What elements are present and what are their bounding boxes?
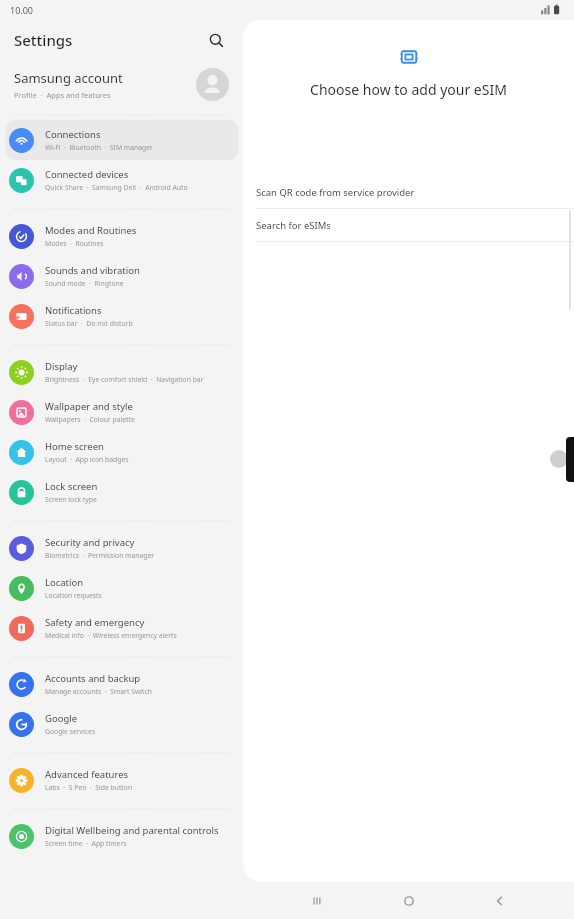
- staticText: Screen lock type: [45, 495, 97, 504]
- staticText: Notifications: [45, 304, 102, 317]
- staticText: Medical info · Wireless emergency alerts: [45, 631, 177, 640]
- button[interactable]: Advanced features: [5, 760, 238, 800]
- staticText: Modes and Routines: [45, 224, 137, 237]
- staticText: Search for eSIMs: [256, 219, 331, 232]
- button[interactable]: Recents: [300, 884, 334, 918]
- staticText: Google: [45, 712, 78, 725]
- staticText: Digital Wellbeing and parental controls: [45, 824, 219, 837]
- staticText: Profile · Apps and features: [14, 90, 111, 100]
- button[interactable]: Home screen: [5, 432, 238, 472]
- staticText: 10.00: [10, 4, 34, 16]
- button[interactable]: Home: [392, 884, 426, 918]
- button[interactable]: Google: [5, 704, 238, 744]
- staticText: Connections: [45, 128, 101, 141]
- staticText: Accounts and backup: [45, 672, 141, 685]
- staticText: Biometrics · Permission manager: [45, 551, 155, 560]
- button[interactable]: Search for eSIMs: [243, 209, 574, 241]
- button[interactable]: Sounds and vibration: [5, 256, 238, 296]
- button[interactable]: Accounts and backup: [5, 664, 238, 704]
- button[interactable]: Location: [5, 568, 238, 608]
- button[interactable]: Digital Wellbeing and parental controls: [5, 816, 238, 856]
- button[interactable]: Connections: [5, 120, 238, 160]
- staticText: Advanced features: [45, 768, 129, 781]
- staticText: Wallpaper and style: [45, 400, 133, 413]
- staticText: Settings: [14, 30, 73, 50]
- staticText: Screen time · App timers: [45, 839, 127, 848]
- staticText: Connected devices: [45, 168, 129, 181]
- button[interactable]: Connected devices: [5, 160, 238, 200]
- staticText: Lock screen: [45, 480, 98, 493]
- staticText: Location requests: [45, 591, 102, 600]
- staticText: Modes · Routines: [45, 239, 104, 248]
- staticText: Brightness · Eye comfort shield · Naviga…: [45, 375, 204, 384]
- staticText: Samsung account: [14, 69, 123, 87]
- button[interactable]: Back: [483, 884, 517, 918]
- staticText: Wi-Fi · Bluetooth · SIM manager: [45, 143, 153, 152]
- staticText: Google services: [45, 727, 96, 736]
- staticText: Labs · S Pen · Side button: [45, 783, 133, 792]
- staticText: Manage accounts · Smart Switch: [45, 687, 152, 696]
- staticText: Scan QR code from service provider: [256, 186, 415, 199]
- button[interactable]: Edge panel handle: [566, 437, 574, 482]
- staticText: Layout · App icon badges: [45, 455, 129, 464]
- staticText: Home screen: [45, 440, 104, 453]
- button[interactable]: Scan QR code from service provider: [243, 176, 574, 208]
- staticText: Sounds and vibration: [45, 264, 140, 277]
- button[interactable]: Notifications: [5, 296, 238, 336]
- staticText: Display: [45, 360, 78, 373]
- staticText: Sound mode · Ringtone: [45, 279, 124, 288]
- staticText: Safety and emergency: [45, 616, 145, 629]
- staticText: Security and privacy: [45, 536, 135, 549]
- button[interactable]: Display: [5, 352, 238, 392]
- button[interactable]: Wallpaper and style: [5, 392, 238, 432]
- button[interactable]: Lock screen: [5, 472, 238, 512]
- staticText: Status bar · Do not disturb: [45, 319, 133, 328]
- staticText: Quick Share · Samsung DeX · Android Auto: [45, 183, 188, 192]
- button[interactable]: Samsung account: [0, 60, 243, 108]
- button[interactable]: Safety and emergency: [5, 608, 238, 648]
- button[interactable]: Security and privacy: [5, 528, 238, 568]
- staticText: Wallpapers · Colour palette: [45, 415, 135, 424]
- button[interactable]: Modes and Routines: [5, 216, 238, 256]
- staticText: Location: [45, 576, 84, 589]
- button[interactable]: Search: [203, 27, 229, 53]
- staticText: Choose how to add your eSIM: [243, 80, 574, 99]
